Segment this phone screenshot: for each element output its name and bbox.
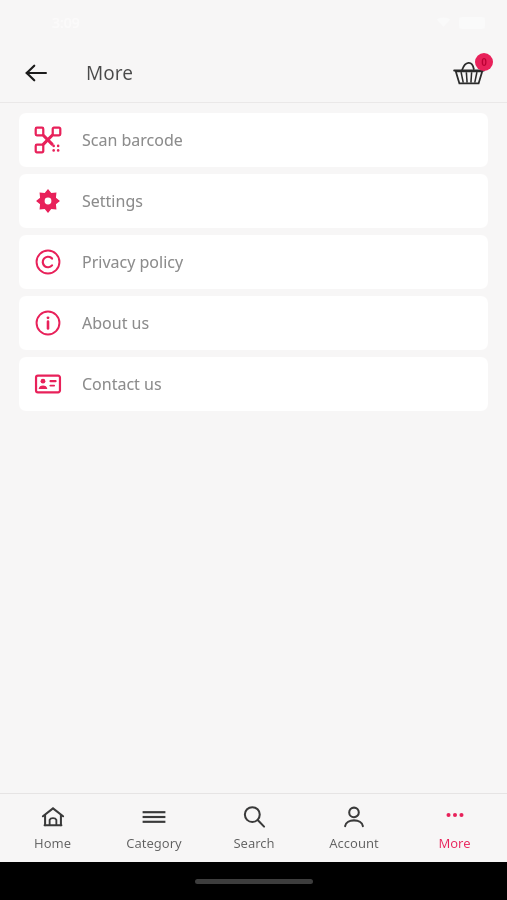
- button[interactable]: Back: [14, 51, 58, 95]
- button[interactable]: Category: [106, 798, 201, 858]
- staticText: More: [438, 834, 471, 852]
- staticText: Category: [126, 834, 182, 852]
- staticText: Contact us: [82, 373, 162, 395]
- staticText: Account: [329, 834, 379, 852]
- button[interactable]: Search: [206, 798, 301, 858]
- staticText: Home: [34, 834, 71, 852]
- staticText: Privacy policy: [82, 251, 184, 273]
- staticText: Search: [233, 834, 275, 852]
- button[interactable]: More: [407, 798, 502, 858]
- staticText: Scan barcode: [82, 129, 183, 151]
- button[interactable]: Account: [306, 798, 401, 858]
- button[interactable]: Privacy policy: [19, 235, 488, 289]
- staticText: About us: [82, 312, 150, 334]
- button[interactable]: Contact us: [19, 357, 488, 411]
- staticText: More: [86, 60, 133, 86]
- button[interactable]: About us: [19, 296, 488, 350]
- button[interactable]: Home: [5, 798, 100, 858]
- staticText: 0: [481, 55, 487, 69]
- button[interactable]: Scan barcode: [19, 113, 488, 167]
- button[interactable]: Cart: [445, 49, 493, 97]
- staticText: Settings: [82, 190, 143, 212]
- button[interactable]: Settings: [19, 174, 488, 228]
